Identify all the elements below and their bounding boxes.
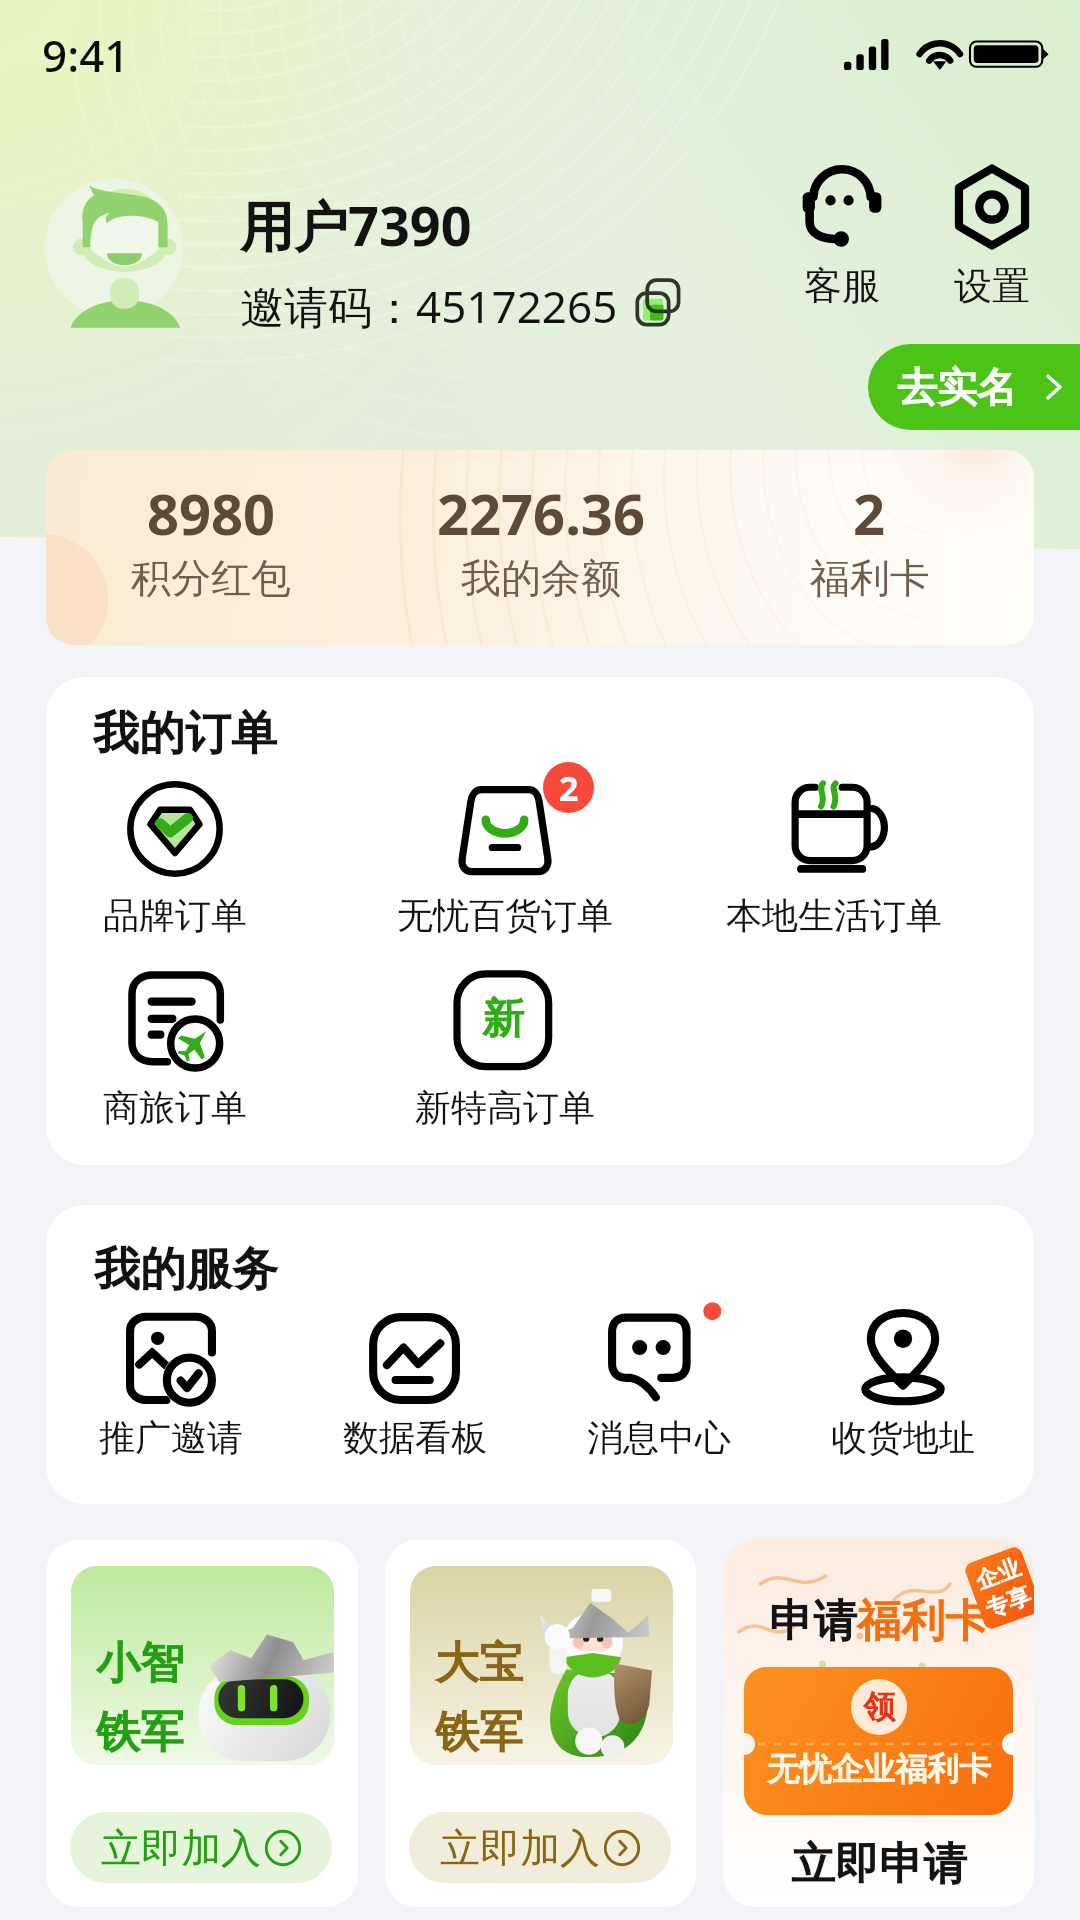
- staticText: 数据看板: [343, 1415, 487, 1460]
- button[interactable]: 2: [705, 450, 1034, 636]
- staticText: 大宝: [435, 1636, 523, 1691]
- button[interactable]: 收货地址: [781, 1313, 1025, 1460]
- button[interactable]: 商旅订单: [46, 973, 340, 1130]
- staticText: 推广邀请: [99, 1415, 243, 1460]
- staticText: 铁军: [96, 1705, 184, 1760]
- staticText: 积分红包: [131, 553, 291, 603]
- button[interactable]: 消息中心: [537, 1313, 781, 1460]
- button[interactable]: 立即加入: [409, 1812, 671, 1883]
- staticText: 2: [559, 765, 579, 811]
- other: 客服: [801, 166, 883, 248]
- other: 设置: [951, 166, 1033, 248]
- staticText: 铁军: [435, 1705, 523, 1760]
- staticText: 申请: [769, 1594, 857, 1649]
- staticText: 去实名: [897, 362, 1017, 412]
- staticText: 小智: [96, 1636, 184, 1691]
- staticText: 9:41: [42, 25, 130, 85]
- staticText: 用户7390: [240, 188, 472, 262]
- staticText: 邀请码：45172265: [240, 276, 618, 336]
- staticText: 福利卡: [857, 1594, 989, 1649]
- staticText: 企业: [971, 1553, 1025, 1596]
- staticText: 我的订单: [93, 705, 277, 763]
- staticText: 8980: [147, 475, 276, 551]
- staticText: 立即申请: [791, 1837, 967, 1892]
- button[interactable]: 设置: [938, 166, 1046, 310]
- button[interactable]: 小智: [46, 1540, 358, 1907]
- staticText: 立即加入: [101, 1823, 261, 1873]
- button[interactable]: 新: [340, 973, 669, 1130]
- button[interactable]: 2: [340, 781, 669, 938]
- staticText: 立即加入: [440, 1823, 600, 1873]
- staticText: 领: [863, 1687, 895, 1727]
- button[interactable]: 去实名: [868, 344, 1080, 430]
- staticText: 我的余额: [461, 553, 621, 603]
- button[interactable]: 本地生活订单: [669, 781, 998, 938]
- staticText: 消息中心: [587, 1415, 731, 1460]
- staticText: 客服: [804, 262, 880, 310]
- staticText: 无忧企业福利卡: [767, 1749, 991, 1789]
- button[interactable]: 申请: [723, 1540, 1034, 1907]
- staticText: 专享: [982, 1581, 1034, 1624]
- staticText: 2276.36: [437, 475, 645, 551]
- button[interactable]: 数据看板: [293, 1313, 537, 1460]
- button[interactable]: 品牌订单: [46, 781, 340, 938]
- button[interactable]: 8980: [46, 450, 376, 636]
- staticText: 新: [482, 993, 524, 1046]
- staticText: 福利卡: [810, 553, 930, 603]
- staticText: 商旅订单: [103, 1085, 247, 1130]
- staticText: 新特高订单: [415, 1085, 595, 1130]
- button[interactable]: 立即加入: [70, 1812, 332, 1883]
- button[interactable]: 客服: [788, 166, 896, 310]
- button[interactable]: 推广邀请: [49, 1313, 293, 1460]
- staticText: 本地生活订单: [726, 893, 942, 938]
- staticText: 无忧百货订单: [397, 893, 613, 938]
- staticText: 2: [853, 475, 886, 551]
- staticText: 品牌订单: [103, 893, 247, 938]
- button[interactable]: 大宝: [385, 1540, 696, 1907]
- staticText: 设置: [954, 262, 1030, 310]
- button[interactable]: 2276.36: [376, 450, 705, 636]
- staticText: 收货地址: [831, 1415, 975, 1460]
- staticText: 我的服务: [94, 1241, 278, 1299]
